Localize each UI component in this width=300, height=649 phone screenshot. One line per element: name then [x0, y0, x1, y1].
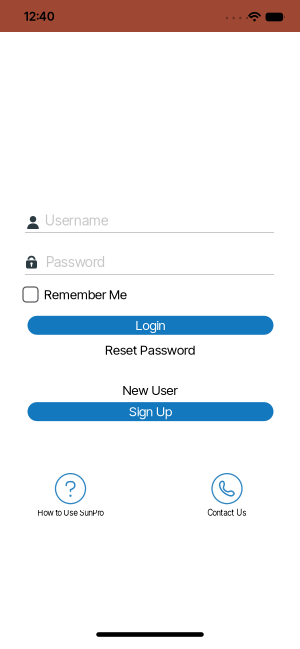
button[interactable]: Login — [27, 316, 273, 335]
staticText: Contact Us — [207, 508, 246, 517]
button[interactable]: Remember Me — [0, 287, 300, 302]
button[interactable]: Password — [0, 254, 300, 270]
staticText: Login — [135, 318, 165, 333]
button[interactable]: Sign Up — [27, 402, 273, 421]
staticText: 12:40 — [24, 9, 55, 24]
staticText: Sign Up — [129, 404, 172, 419]
staticText: Remember Me — [44, 287, 127, 302]
staticText: How to Use SunPro — [37, 508, 103, 517]
staticText: Reset Password — [105, 342, 195, 358]
staticText: Username — [45, 212, 108, 229]
button[interactable]: How to Use SunPro — [37, 474, 103, 517]
staticText: New User — [122, 383, 177, 398]
button[interactable]: Username — [0, 212, 300, 229]
button[interactable]: Contact Us — [207, 474, 246, 517]
staticText: Password — [46, 254, 105, 270]
button[interactable]: Reset Password — [105, 342, 195, 358]
